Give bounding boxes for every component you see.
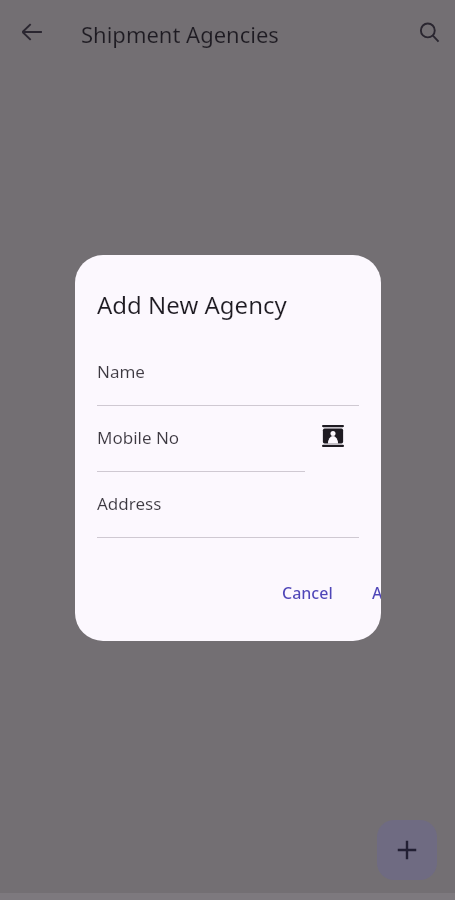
staticText: Mobile No <box>97 426 180 449</box>
staticText: Cancel <box>282 582 333 604</box>
button[interactable]: Add <box>360 573 381 613</box>
button[interactable] <box>97 482 359 536</box>
staticText: Shipment Agencies <box>81 19 279 49</box>
staticText: Name <box>97 360 145 383</box>
button[interactable]: Cancel <box>270 573 345 613</box>
staticText: Add <box>372 582 381 604</box>
button[interactable] <box>97 350 359 406</box>
button[interactable]: Pick contact <box>309 412 357 460</box>
button[interactable]: Add <box>377 820 437 880</box>
staticText: Address <box>97 492 162 515</box>
button[interactable] <box>97 416 305 470</box>
button[interactable]: Back <box>10 10 54 54</box>
staticText: Add New Agency <box>97 288 287 321</box>
button[interactable]: Search <box>407 10 451 54</box>
